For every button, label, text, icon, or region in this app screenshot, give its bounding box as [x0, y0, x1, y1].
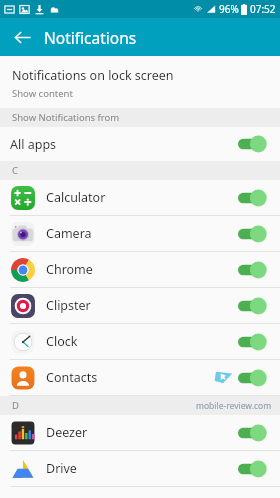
button[interactable]: Toggle: [238, 188, 270, 208]
staticText: Show Notifications from: [12, 111, 120, 124]
staticText: 07:52: [250, 2, 276, 16]
button[interactable]: Clipster: [0, 288, 280, 323]
staticText: Notifications: [44, 27, 137, 48]
button[interactable]: Toggle: [238, 296, 270, 316]
staticText: Deezer: [46, 424, 88, 441]
staticText: Show content: [12, 87, 73, 100]
button[interactable]: Toggle: [238, 459, 270, 479]
staticText: Contacts: [46, 369, 98, 386]
button[interactable]: Toggle: [238, 260, 270, 280]
staticText: mobile-review.com: [196, 400, 272, 412]
button[interactable]: Toggle: [238, 368, 270, 388]
staticText: Notifications on lock screen: [12, 67, 174, 84]
staticText: Clipster: [46, 297, 91, 314]
button[interactable]: Toggle: [238, 224, 270, 244]
button[interactable]: Deezer: [0, 415, 280, 450]
staticText: Camera: [46, 225, 92, 242]
staticText: All apps: [10, 136, 57, 153]
staticText: Drive: [46, 460, 77, 477]
staticText: 96%: [219, 2, 239, 16]
button[interactable]: Toggle: [238, 134, 270, 154]
button[interactable]: Clock: [0, 324, 280, 359]
button[interactable]: Contacts: [0, 360, 280, 395]
button[interactable]: All apps: [0, 127, 280, 161]
staticText: Chrome: [46, 261, 93, 278]
button[interactable]: Notifications on lock screen: [0, 60, 280, 108]
button[interactable]: Calculator: [0, 180, 280, 215]
button[interactable]: Chrome: [0, 252, 280, 287]
button[interactable]: Toggle: [238, 423, 270, 443]
button[interactable]: Toggle: [238, 332, 270, 352]
staticText: C: [12, 164, 19, 177]
staticText: Clock: [46, 333, 78, 350]
staticText: D: [12, 399, 19, 412]
button[interactable]: Back: [8, 23, 36, 51]
button[interactable]: Camera: [0, 216, 280, 251]
staticText: Calculator: [46, 189, 106, 206]
button[interactable]: Drive: [0, 451, 280, 486]
